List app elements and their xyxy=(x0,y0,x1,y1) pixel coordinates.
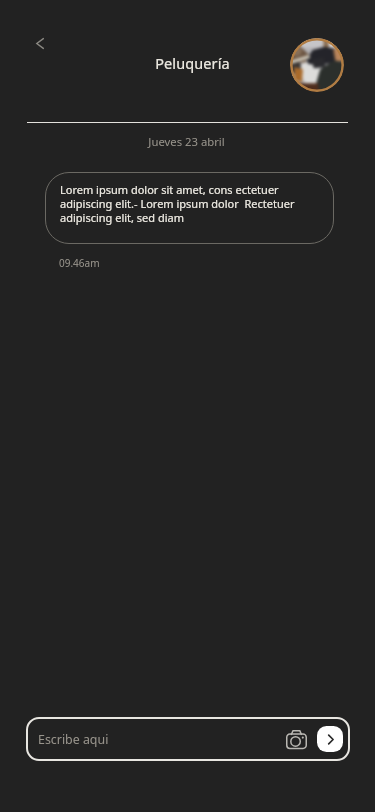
staticText: Jueves 23 abril xyxy=(148,134,225,149)
button[interactable]: Back xyxy=(24,28,55,59)
button[interactable]: Lorem ipsum dolor sit amet, cons ectetue… xyxy=(45,172,334,244)
staticText: Peluquería xyxy=(155,53,230,73)
button[interactable]: Escribe aqui xyxy=(26,717,350,761)
button[interactable]: Send xyxy=(317,726,343,752)
button[interactable]: Contact photo xyxy=(290,38,344,92)
staticText: 09.46am xyxy=(59,256,100,270)
staticText: Lorem ipsum dolor sit amet, cons ectetue… xyxy=(60,182,295,226)
button[interactable]: Camera xyxy=(279,722,313,756)
staticText: Escribe aqui xyxy=(38,731,109,748)
